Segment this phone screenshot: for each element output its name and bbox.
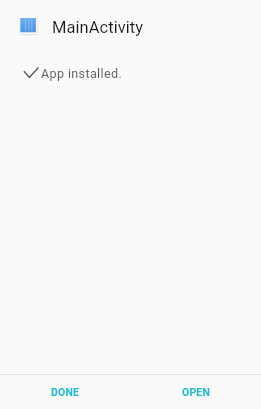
other: App icon [18,16,39,36]
staticText: App installed. [41,66,123,81]
staticText: DONE [51,386,80,398]
button[interactable]: DONE [0,375,130,409]
staticText: OPEN [182,386,210,398]
button[interactable]: OPEN [130,375,261,409]
other: Installed [23,66,38,81]
staticText: MainActivity [52,18,144,37]
